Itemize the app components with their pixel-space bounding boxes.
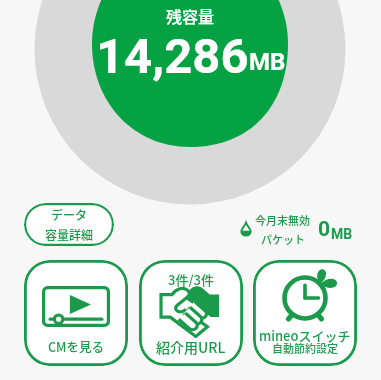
staticText: 3件/3件 (168, 270, 214, 289)
staticText: 残容量 (166, 4, 215, 27)
button[interactable]: mineoスイッチ (253, 260, 357, 366)
staticText: データ (51, 206, 88, 223)
staticText: MB (249, 48, 286, 76)
staticText: 0 (318, 217, 331, 242)
button[interactable]: CMを見る (24, 260, 128, 366)
button[interactable]: データ (24, 203, 114, 246)
staticText: パケット (261, 231, 305, 247)
staticText: mineoスイッチ (259, 326, 351, 345)
staticText: 容量詳細 (45, 226, 94, 243)
staticText: 自動節約設定 (272, 340, 338, 356)
staticText: 今月末無効 (255, 212, 310, 228)
staticText: MB (331, 226, 353, 242)
staticText: 14,286 (96, 28, 249, 85)
button[interactable]: 紹介用URL (139, 260, 243, 366)
staticText: 紹介用URL (156, 337, 226, 357)
staticText: CMを見る (48, 337, 104, 355)
